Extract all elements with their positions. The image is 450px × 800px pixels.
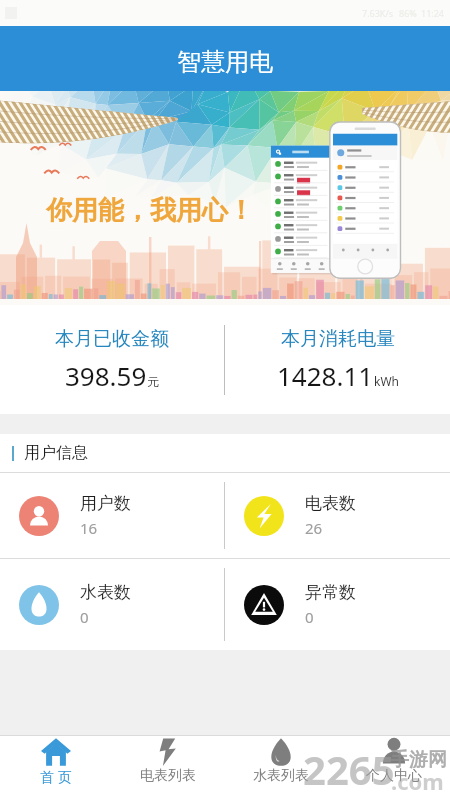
staticText: 元: [147, 374, 159, 389]
staticText: .com: [391, 766, 444, 796]
staticText: 手游网: [390, 748, 447, 772]
staticText: 用户数: [80, 493, 131, 514]
staticText: 首 页: [40, 767, 72, 786]
button[interactable]: 异常数: [225, 559, 450, 650]
staticText: 水表列表: [253, 767, 309, 785]
staticText: 智慧用电: [177, 47, 273, 77]
staticText: 本月已收金额: [55, 327, 169, 351]
staticText: 异常数: [305, 582, 356, 603]
staticText: 0: [305, 607, 314, 627]
button[interactable]: Home: [0, 736, 112, 800]
button[interactable]: Profile: [337, 736, 450, 800]
staticText: 16: [80, 518, 98, 538]
staticText: 11:24: [421, 7, 445, 19]
button[interactable]: 水表数: [0, 559, 224, 650]
button[interactable]: Water meter list: [224, 736, 337, 800]
staticText: 本月消耗电量: [281, 327, 395, 351]
button[interactable]: 用户数: [0, 473, 224, 558]
staticText: 86%: [399, 7, 417, 19]
button[interactable]: Electricity meter list: [112, 736, 224, 800]
staticText: kWh: [374, 373, 399, 389]
button[interactable]: 电表数: [225, 473, 450, 558]
staticText: 26: [305, 518, 323, 538]
staticText: 7.63K/s: [362, 7, 394, 19]
staticText: 电表列表: [140, 767, 196, 785]
staticText: 用户信息: [24, 443, 88, 463]
staticText: 0: [80, 607, 89, 627]
button[interactable]: 本月已收金额: [0, 305, 224, 414]
staticText: 你用能，我用心！: [46, 194, 254, 227]
staticText: 2265: [303, 742, 395, 796]
staticText: 水表数: [80, 582, 131, 603]
staticText: 个人中心: [366, 767, 422, 785]
button[interactable]: 本月消耗电量: [225, 305, 450, 414]
staticText: 1428.11: [277, 358, 374, 393]
staticText: 电表数: [305, 493, 356, 514]
staticText: 398.59: [65, 358, 147, 393]
